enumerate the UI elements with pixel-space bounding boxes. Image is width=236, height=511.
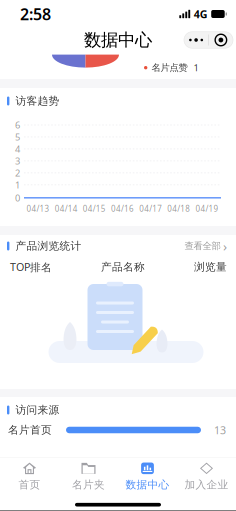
- button[interactable]: 查看全部: [184, 233, 227, 259]
- staticText: 4G: [194, 7, 208, 21]
- staticText: 浏览量: [194, 260, 227, 273]
- staticText: 5: [15, 131, 20, 143]
- staticText: 首页: [18, 478, 40, 491]
- staticText: 2: [15, 167, 20, 179]
- button[interactable]: 加入企业: [177, 458, 236, 496]
- staticText: 04/18: [167, 203, 190, 214]
- staticText: 04/15: [83, 203, 106, 214]
- staticText: 3: [15, 155, 20, 167]
- button[interactable]: 首页: [0, 458, 59, 496]
- staticText: 访问来源: [15, 403, 59, 416]
- staticText: 04/19: [195, 203, 218, 214]
- staticText: 产品浏览统计: [15, 239, 81, 252]
- staticText: 查看全部: [184, 240, 220, 252]
- staticText: 1: [193, 61, 198, 74]
- staticText: 04/14: [55, 203, 78, 214]
- staticText: 0: [15, 192, 20, 204]
- staticText: 04/13: [27, 203, 50, 214]
- staticText: 名片点赞: [151, 62, 187, 73]
- staticText: 2:58: [20, 3, 51, 25]
- staticText: 4: [15, 143, 20, 155]
- staticText: 04/17: [139, 203, 162, 214]
- staticText: 名片首页: [8, 423, 52, 436]
- staticText: 6: [15, 119, 20, 131]
- staticText: ›: [223, 237, 227, 255]
- staticText: 名片夹: [72, 478, 105, 491]
- staticText: 数据中心: [125, 478, 169, 491]
- staticText: 访客趋势: [15, 94, 59, 107]
- staticText: 13: [214, 423, 226, 437]
- staticText: 数据中心: [84, 29, 152, 51]
- staticText: 加入企业: [184, 478, 228, 491]
- staticText: TOP排名: [10, 260, 52, 274]
- button[interactable]: 数据中心: [118, 458, 177, 496]
- staticText: 1: [15, 179, 20, 191]
- staticText: 产品名称: [101, 260, 145, 273]
- button[interactable]: 更多: [184, 32, 233, 48]
- staticText: 04/16: [111, 203, 134, 214]
- button[interactable]: 名片夹: [59, 458, 118, 496]
